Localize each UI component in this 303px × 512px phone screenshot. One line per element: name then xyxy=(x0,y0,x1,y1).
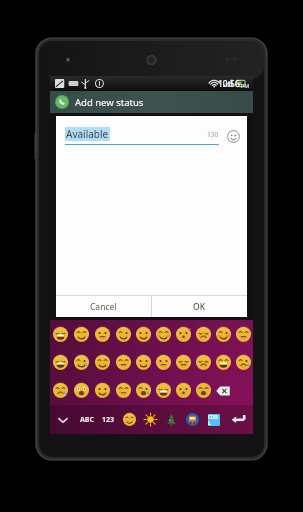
button[interactable]: Emoji xyxy=(92,376,113,405)
staticText: 130 xyxy=(207,130,219,139)
button[interactable]: Emoji xyxy=(71,320,92,348)
button[interactable]: Emoji xyxy=(173,376,193,405)
staticText: OK xyxy=(193,301,206,313)
button[interactable]: Nature category xyxy=(140,405,161,434)
button[interactable]: Emoji xyxy=(133,348,153,376)
staticText: ABC xyxy=(80,415,94,425)
button[interactable]: Emoji xyxy=(71,348,92,376)
staticText: Cancel xyxy=(90,301,117,313)
button[interactable]: Emoji xyxy=(193,348,213,376)
button[interactable]: Backspace xyxy=(213,376,233,405)
button[interactable]: Cancel xyxy=(56,296,151,317)
button[interactable]: Emoji xyxy=(113,320,133,348)
button[interactable]: Hide keyboard xyxy=(50,405,75,434)
button[interactable]: Emoji xyxy=(233,348,253,376)
button[interactable]: Emoji xyxy=(92,348,113,376)
button[interactable]: Celebration category xyxy=(161,405,182,434)
staticText: COOL xyxy=(208,414,220,426)
button[interactable]: Emoji xyxy=(173,320,193,348)
button[interactable]: Emoji xyxy=(50,348,71,376)
button[interactable]: Add new status xyxy=(50,91,253,113)
button[interactable]: Emoji xyxy=(50,320,71,348)
button[interactable]: Emoji xyxy=(50,376,71,405)
button[interactable]: ABC xyxy=(75,405,98,434)
staticText: 123 xyxy=(102,415,115,425)
button[interactable]: Emoji xyxy=(227,130,240,143)
button[interactable]: Travel category xyxy=(182,405,203,434)
button[interactable]: Emoji xyxy=(233,320,253,348)
staticText: Available xyxy=(66,127,109,141)
button[interactable]: Emoji xyxy=(153,376,173,405)
button[interactable]: Emoji xyxy=(173,348,193,376)
button[interactable]: Emoji xyxy=(71,376,92,405)
button[interactable]: Smileys category xyxy=(119,405,140,434)
button[interactable]: Emoji xyxy=(133,376,153,405)
button[interactable]: Emoji xyxy=(213,348,233,376)
button[interactable]: Emoji xyxy=(153,348,173,376)
button[interactable]: Enter xyxy=(224,405,253,434)
button[interactable]: Emoji xyxy=(213,320,233,348)
button[interactable]: Emoji xyxy=(133,320,153,348)
staticText: 10:56 xyxy=(218,78,240,90)
button[interactable]: Symbols category xyxy=(203,405,224,434)
staticText: Add new status xyxy=(75,96,144,109)
button[interactable]: Emoji xyxy=(113,376,133,405)
button[interactable]: Emoji xyxy=(92,320,113,348)
button[interactable]: Emoji xyxy=(153,320,173,348)
button[interactable]: Emoji xyxy=(113,348,133,376)
button[interactable]: 123 xyxy=(98,405,119,434)
button[interactable]: Emoji xyxy=(193,320,213,348)
button[interactable]: OK xyxy=(152,296,247,317)
button[interactable]: Emoji xyxy=(193,376,213,405)
staticText: PM xyxy=(241,82,250,89)
